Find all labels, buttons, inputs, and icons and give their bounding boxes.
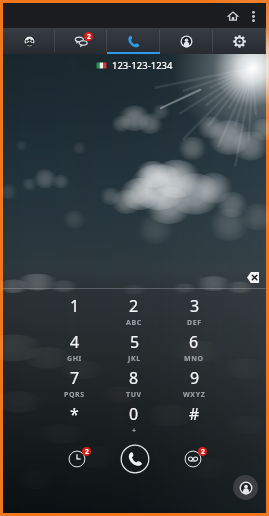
- button[interactable]: 3: [164, 293, 224, 329]
- staticText: WXYZ: [183, 390, 206, 400]
- button[interactable]: #: [164, 401, 224, 435]
- staticText: 9: [190, 367, 200, 389]
- button[interactable]: Dialer: [107, 28, 160, 54]
- staticText: 1: [70, 295, 80, 317]
- staticText: 0: [129, 403, 139, 425]
- button[interactable]: 4: [45, 329, 104, 365]
- button[interactable]: Settings: [213, 28, 266, 54]
- staticText: ABC: [126, 318, 142, 328]
- staticText: *: [70, 403, 79, 425]
- staticText: 6: [189, 331, 199, 353]
- staticText: 8: [129, 367, 139, 389]
- staticText: 4: [70, 331, 80, 353]
- staticText: TUV: [126, 390, 142, 400]
- staticText: 2: [85, 447, 89, 456]
- staticText: 3: [190, 295, 200, 317]
- staticText: MNO: [184, 354, 204, 364]
- staticText: +: [132, 426, 137, 435]
- button[interactable]: Voicemail: [164, 435, 222, 483]
- button[interactable]: 2: [104, 293, 164, 329]
- button[interactable]: Conference: [3, 28, 55, 54]
- button[interactable]: 9: [164, 365, 224, 401]
- staticText: PQRS: [64, 390, 85, 400]
- button[interactable]: Backspace: [243, 268, 263, 286]
- button[interactable]: 8: [104, 365, 164, 401]
- staticText: DEF: [187, 318, 202, 328]
- staticText: GHI: [67, 354, 82, 364]
- button[interactable]: Contacts: [233, 475, 258, 500]
- button[interactable]: Call: [106, 435, 164, 483]
- button[interactable]: More options: [246, 9, 260, 23]
- staticText: 2: [201, 447, 205, 456]
- button[interactable]: 7: [45, 365, 104, 401]
- button[interactable]: 1: [45, 293, 104, 329]
- staticText: 5: [130, 331, 140, 353]
- button[interactable]: 6: [164, 329, 224, 365]
- staticText: 123-123-1234: [112, 59, 173, 72]
- button[interactable]: *: [45, 401, 104, 435]
- staticText: 2: [87, 32, 91, 41]
- button[interactable]: 5: [104, 329, 164, 365]
- staticText: 7: [70, 367, 80, 389]
- button[interactable]: Messages: [55, 28, 107, 54]
- button[interactable]: Home: [226, 9, 240, 23]
- button[interactable]: Contacts: [160, 28, 213, 54]
- staticText: 2: [129, 295, 139, 317]
- button[interactable]: 0: [104, 401, 164, 435]
- button[interactable]: Call history: [47, 435, 106, 483]
- staticText: #: [189, 403, 200, 425]
- staticText: JKL: [128, 354, 141, 364]
